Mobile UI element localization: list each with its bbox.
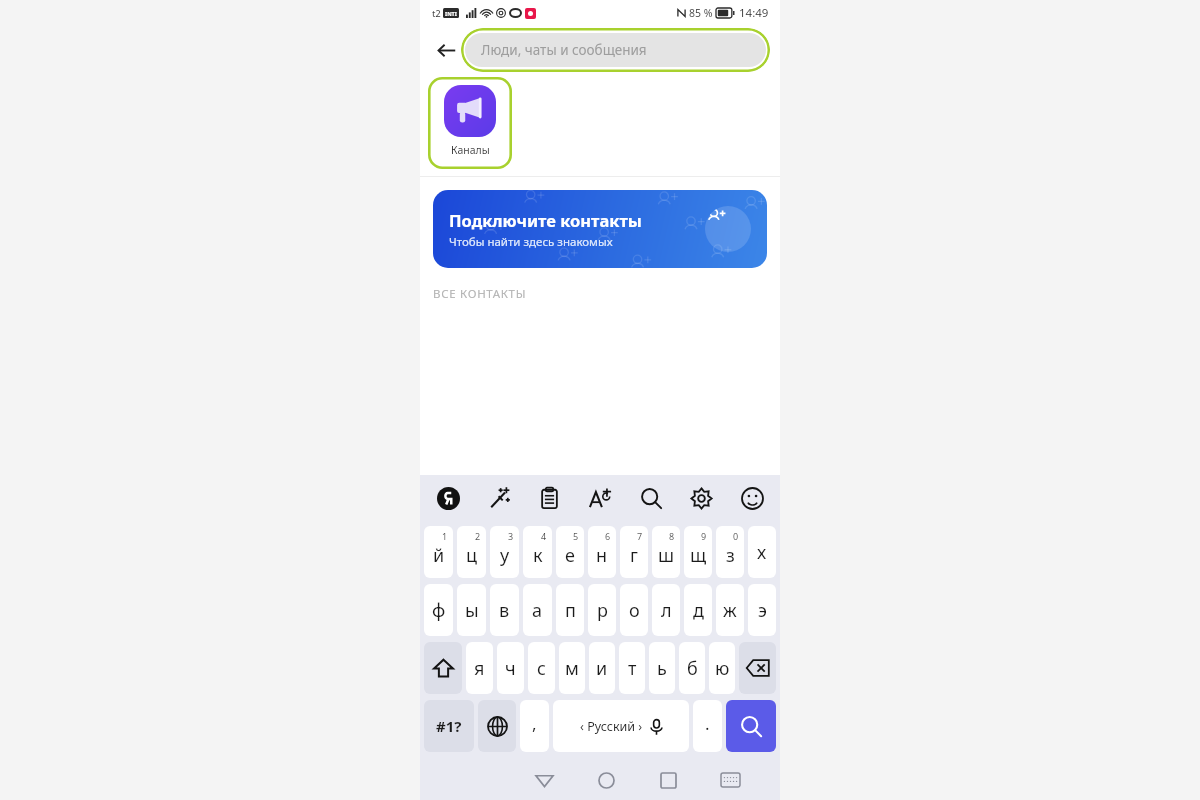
staticText: х	[757, 540, 767, 565]
button[interactable]: б	[679, 642, 705, 694]
staticText: з	[726, 543, 735, 568]
staticText: г	[630, 543, 638, 568]
staticText: 3	[508, 530, 514, 542]
staticText: щ	[690, 543, 707, 568]
button[interactable]: у	[490, 526, 519, 578]
button[interactable]: Language	[478, 700, 516, 752]
button[interactable]: Settings	[685, 482, 717, 514]
staticText: у	[500, 543, 510, 568]
staticText: 5	[573, 530, 579, 542]
button[interactable]: #1?	[424, 700, 474, 752]
staticText: 85 %	[689, 6, 713, 20]
staticText: э	[758, 598, 767, 623]
staticText: ВСЕ КОНТАКТЫ	[433, 286, 527, 302]
button[interactable]: ж	[716, 584, 744, 636]
button[interactable]: Подключите контакты	[433, 190, 767, 268]
staticText: 0	[733, 530, 739, 542]
button[interactable]: Clipboard	[533, 482, 565, 514]
staticText: м	[565, 656, 579, 681]
staticText: ю	[715, 656, 730, 681]
staticText: Подключите контакты	[449, 209, 642, 231]
button[interactable]: Каналы	[428, 77, 512, 169]
button[interactable]: п	[556, 584, 584, 636]
button[interactable]: Search	[726, 700, 776, 752]
button[interactable]: т	[619, 642, 645, 694]
staticText: 8	[669, 530, 675, 542]
staticText: ы	[465, 598, 479, 623]
button[interactable]: г	[620, 526, 648, 578]
button[interactable]: ф	[424, 584, 453, 636]
staticText: ‹ Русский ›	[580, 718, 643, 735]
button[interactable]: Search	[635, 482, 667, 514]
button[interactable]: Люди, чаты и сообщения	[465, 33, 766, 67]
staticText: с	[537, 656, 546, 681]
button[interactable]: ь	[649, 642, 675, 694]
staticText: Каналы	[451, 143, 490, 157]
button[interactable]: Shift	[424, 642, 462, 694]
button[interactable]: Space	[553, 700, 689, 752]
button[interactable]: р	[588, 584, 616, 636]
staticText: в	[499, 598, 510, 623]
staticText: 7	[637, 530, 643, 542]
button[interactable]: и	[589, 642, 615, 694]
button[interactable]: х	[748, 526, 776, 578]
button[interactable]: о	[620, 584, 648, 636]
button[interactable]: к	[523, 526, 552, 578]
staticText: ш	[658, 543, 675, 568]
staticText: д	[693, 598, 704, 623]
button[interactable]: Home	[575, 760, 637, 800]
button[interactable]: Back	[428, 32, 464, 68]
staticText: 9	[701, 530, 707, 542]
button[interactable]: Yandex	[432, 482, 464, 514]
staticText: л	[661, 598, 672, 623]
staticText: о	[629, 598, 640, 623]
staticText: й	[433, 543, 445, 568]
button[interactable]: ш	[652, 526, 680, 578]
staticText: к	[533, 543, 543, 568]
staticText: п	[565, 598, 576, 623]
staticText: ж	[723, 598, 737, 623]
button[interactable]: е	[556, 526, 584, 578]
button[interactable]: л	[652, 584, 680, 636]
button[interactable]: .	[693, 700, 722, 752]
button[interactable]: Hide keyboard	[699, 760, 761, 800]
staticText: т	[628, 656, 637, 681]
staticText: ь	[657, 656, 667, 681]
button[interactable]: ч	[497, 642, 524, 694]
button[interactable]: ц	[457, 526, 486, 578]
button[interactable]: м	[559, 642, 585, 694]
button[interactable]: Backspace	[739, 642, 776, 694]
staticText: н	[596, 543, 608, 568]
button[interactable]: й	[424, 526, 453, 578]
staticText: INTI	[445, 10, 457, 17]
button[interactable]: д	[684, 584, 712, 636]
button[interactable]: Recents	[637, 760, 699, 800]
button[interactable]: а	[523, 584, 552, 636]
staticText: е	[565, 543, 575, 568]
staticText: #1?	[436, 716, 462, 736]
button[interactable]: Translate	[584, 482, 616, 514]
button[interactable]: Magic	[483, 482, 515, 514]
staticText: 6	[605, 530, 611, 542]
staticText: 4	[541, 530, 547, 542]
button[interactable]: ю	[709, 642, 735, 694]
button[interactable]: з	[716, 526, 744, 578]
button[interactable]: я	[466, 642, 493, 694]
button[interactable]: ы	[457, 584, 486, 636]
button[interactable]: Back	[513, 760, 575, 800]
staticText: 2	[475, 530, 481, 542]
staticText: ц	[466, 543, 478, 568]
button[interactable]: э	[748, 584, 776, 636]
button[interactable]: ,	[520, 700, 549, 752]
staticText: ч	[505, 656, 516, 681]
staticText: ,	[532, 712, 537, 735]
staticText: и	[596, 656, 608, 681]
staticText: Чтобы найти здесь знакомых	[449, 234, 613, 250]
button[interactable]: Emoji	[736, 482, 768, 514]
button[interactable]: щ	[684, 526, 712, 578]
button[interactable]: с	[528, 642, 555, 694]
staticText: 1	[442, 530, 448, 542]
button[interactable]: н	[588, 526, 616, 578]
button[interactable]: в	[490, 584, 519, 636]
staticText: а	[532, 598, 543, 623]
